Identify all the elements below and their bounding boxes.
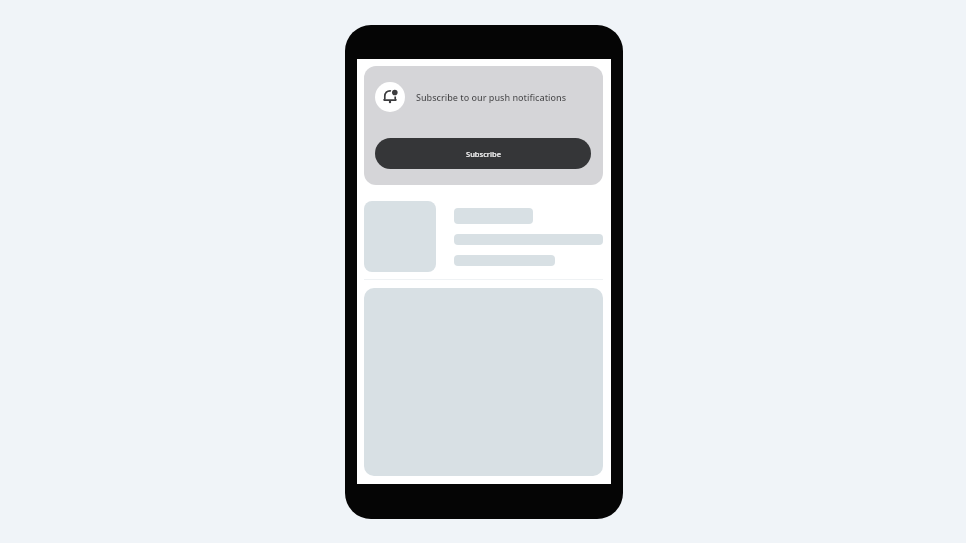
staticText: Subscribe (466, 149, 501, 159)
staticText: Subscribe to our push notifications (416, 91, 567, 103)
other: Notifications (382, 89, 398, 105)
button[interactable]: Subscribe (375, 138, 591, 169)
